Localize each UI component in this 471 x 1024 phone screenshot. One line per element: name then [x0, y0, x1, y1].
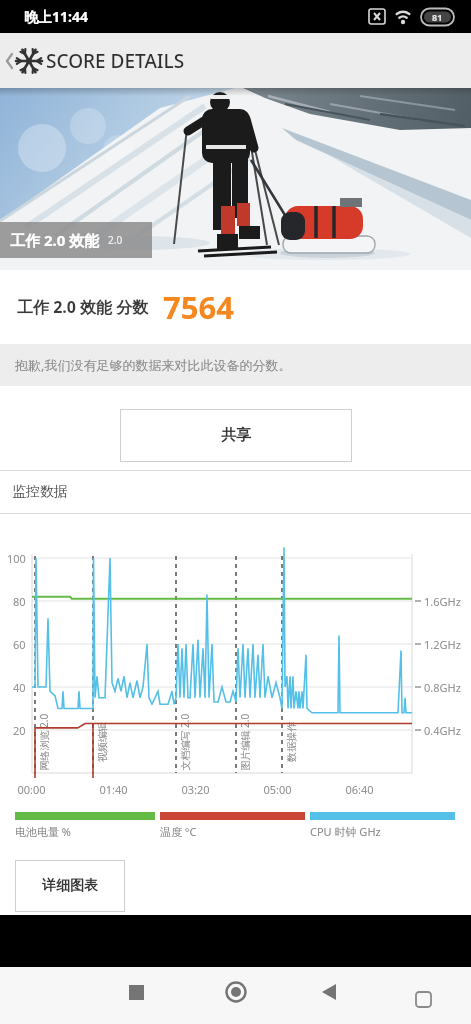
staticText: 温度 °C [160, 824, 197, 839]
staticText: 工作 2.0 效能 分数 [17, 296, 149, 318]
button[interactable] [314, 967, 471, 1024]
button[interactable]: 工作 2.0 效能 [0, 222, 152, 258]
staticText: 共享 [221, 426, 251, 445]
staticText: 电池电量 % [15, 824, 72, 839]
staticText: 81 [432, 11, 443, 23]
staticText: CPU 时钟 GHz [310, 824, 381, 839]
button[interactable]: SCORE DETAILS [0, 33, 471, 88]
staticText: 7564 [163, 286, 234, 328]
staticText: 监控数据 [12, 483, 68, 501]
staticText: 2.0 [108, 233, 123, 247]
staticText: 工作 2.0 效能 [10, 230, 100, 250]
button[interactable]: 共享 [120, 409, 352, 462]
staticText: 抱歉,我们没有足够的数据来对比此设备的分数。 [15, 356, 292, 374]
staticText: 晚上11:44 [24, 7, 88, 26]
button[interactable]: 详细图表 [15, 860, 125, 912]
button[interactable] [0, 967, 157, 1024]
staticText: SCORE DETAILS [46, 48, 185, 74]
button[interactable] [157, 967, 314, 1024]
staticText: 详细图表 [42, 877, 98, 895]
